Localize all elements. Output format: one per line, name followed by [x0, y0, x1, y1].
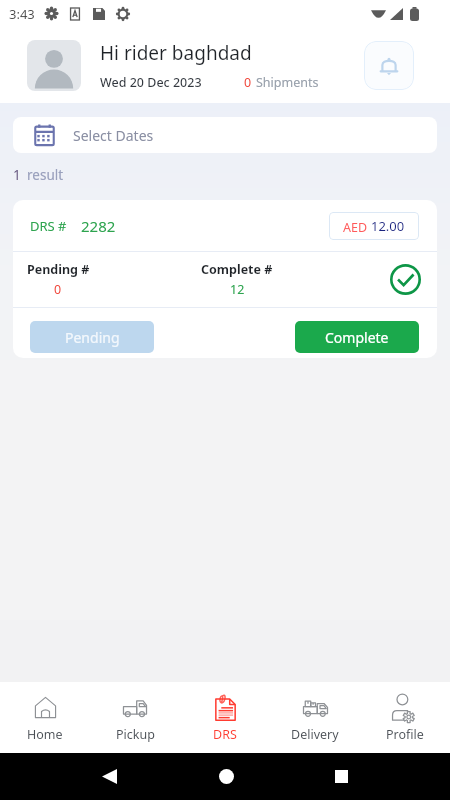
button[interactable]: Pickup	[90, 682, 180, 753]
button[interactable]: Complete	[295, 321, 419, 353]
staticText: Delivery	[291, 726, 339, 743]
button[interactable]: Profile	[360, 682, 450, 753]
staticText: Shipments	[256, 74, 319, 91]
staticText: DRS #	[30, 217, 67, 235]
button[interactable]: Pending	[30, 321, 154, 353]
staticText: AED	[343, 219, 368, 236]
staticText: Profile	[386, 726, 424, 743]
button[interactable]: DRS	[180, 682, 270, 753]
staticText: Hi rider baghdad	[100, 40, 252, 66]
staticText: 2282	[81, 216, 116, 236]
staticText: 12.00	[371, 217, 405, 235]
staticText: 0	[244, 74, 252, 91]
staticText: Complete	[325, 328, 389, 347]
staticText: result	[27, 166, 64, 184]
button[interactable]: Select Dates	[13, 117, 437, 153]
staticText: Home	[27, 726, 63, 743]
staticText: Pending #	[27, 261, 90, 278]
button[interactable]: Home	[0, 682, 90, 753]
staticText: 1	[13, 166, 21, 184]
staticText: 0	[54, 281, 62, 298]
staticText: Select Dates	[73, 126, 154, 145]
staticText: 12	[230, 281, 245, 298]
button[interactable]: Delivery	[270, 682, 360, 753]
staticText: DRS	[213, 726, 237, 743]
staticText: Complete #	[201, 261, 273, 278]
staticText: 3:43	[9, 5, 35, 23]
staticText: Pickup	[116, 726, 155, 743]
staticText: Pending	[65, 328, 120, 347]
staticText: Wed 20 Dec 2023	[100, 74, 202, 91]
button[interactable]: Notifications	[364, 41, 414, 90]
